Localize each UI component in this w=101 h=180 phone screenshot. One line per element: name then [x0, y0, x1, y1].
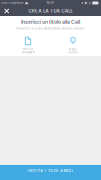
- staticText: LUOGO: [68, 51, 78, 54]
- staticText: INVITA I TUOI AMICI: [28, 168, 73, 173]
- staticText: CREA LA TUA CALL: [28, 8, 73, 14]
- staticText: ATTIVITÀ: [23, 48, 33, 51]
- button[interactable]: Scegli luogo: [53, 37, 93, 54]
- staticText: Inserisci un titolo alla Call: [21, 19, 80, 25]
- staticText: vodafone: [9, 1, 24, 5]
- button[interactable]: Chiudi: [0, 6, 13, 15]
- staticText: SUGGERITE: [21, 51, 34, 54]
- button[interactable]: INVITA I TUOI AMICI: [0, 165, 101, 180]
- button[interactable]: Attività suggerite: [8, 37, 48, 54]
- staticText: SCEGLI: [69, 48, 77, 51]
- staticText: Inserisci a cosa dedicherai questo spazi…: [16, 26, 84, 30]
- staticText: 15:07: [46, 1, 54, 5]
